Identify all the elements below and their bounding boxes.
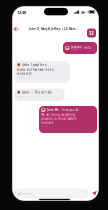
staticText: 10:32 am (41, 125, 47, 127)
staticText: John (22, 91, 29, 94)
staticText: 10:30 am (71, 49, 77, 51)
button[interactable]: Apps (87, 28, 96, 37)
staticText: 10:31 am (17, 95, 23, 97)
staticText: Hello (84, 46, 92, 50)
staticText: possible to these matters (41, 117, 76, 120)
staticText: John (22, 63, 29, 67)
staticText: Efe (31, 91, 33, 93)
staticText: This isn't fair (35, 91, 52, 94)
staticText: Jane Efe (47, 108, 59, 112)
staticText: We are doing everything (41, 113, 75, 116)
staticText: Jackson (71, 45, 82, 49)
staticText: 12:30 (17, 10, 26, 15)
button[interactable]: Send (90, 189, 99, 198)
button[interactable]: Type Here... (14, 189, 88, 198)
staticText: service but has never been (17, 68, 54, 71)
button[interactable]: Back (11, 24, 21, 33)
staticText: Type Here... (17, 192, 34, 195)
staticText: resolved (41, 121, 53, 124)
staticText: I paid for a (31, 63, 46, 67)
staticText: 10:31 am (17, 76, 23, 78)
staticText: I hear you all. (61, 108, 80, 112)
staticText: rendered! (17, 72, 32, 75)
staticText: John D, Mary & Jeffrey +20 More… (29, 27, 78, 31)
